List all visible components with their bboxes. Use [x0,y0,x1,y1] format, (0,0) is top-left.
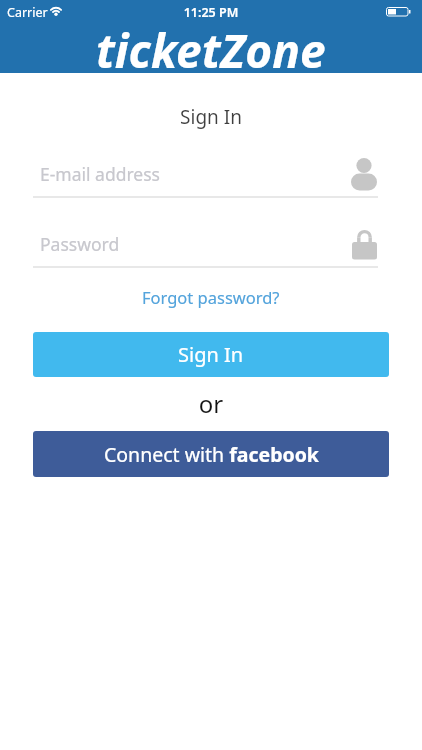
button[interactable]: E-mail address [33,148,389,198]
button[interactable]: Password [33,218,389,268]
staticText: Password [40,232,120,256]
staticText: Connect with facebook [104,441,319,468]
staticText: Sign In [0,104,422,130]
button[interactable]: Sign In [33,332,389,377]
staticText: E-mail address [40,162,160,186]
staticText: Forgot password? [142,286,280,308]
staticText: 11:25 PM [0,4,422,21]
button[interactable]: Forgot password? [121,284,301,310]
staticText: Carrier [7,4,48,21]
staticText: or [0,387,422,420]
staticText: Sign In [178,341,244,368]
staticText: ticketZone [96,19,326,82]
button[interactable]: Connect with facebook [33,431,389,477]
